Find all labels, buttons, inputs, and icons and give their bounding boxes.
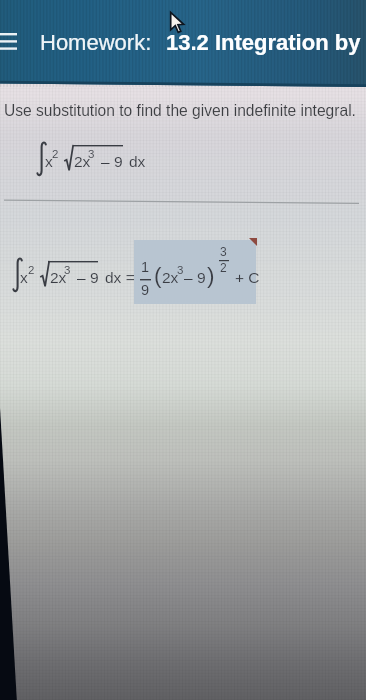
staticText: 2	[220, 261, 227, 274]
staticText: – 9	[101, 153, 123, 170]
staticText: 3	[64, 264, 71, 277]
staticText: Homework:	[40, 30, 152, 55]
button[interactable]: Open navigation menu	[0, 28, 26, 56]
staticText: 2x	[162, 269, 179, 286]
staticText: 2x	[74, 153, 91, 170]
staticText: 2x	[50, 269, 67, 286]
staticText: x	[20, 269, 28, 286]
button[interactable]	[134, 240, 256, 304]
staticText: 2	[52, 148, 59, 161]
staticText: dx =	[105, 269, 135, 286]
staticText: (	[154, 263, 162, 288]
staticText: – 9	[184, 269, 206, 286]
staticText: 3	[177, 264, 184, 277]
staticText: Use substitution to find the given indef…	[4, 102, 356, 119]
staticText: 13.2 Integration by	[166, 30, 361, 55]
staticText: 3	[88, 148, 95, 161]
staticText: )	[207, 263, 215, 288]
staticText: – 9	[77, 269, 99, 286]
staticText: 3	[220, 245, 227, 258]
staticText: + C	[235, 269, 260, 286]
staticText: 2	[28, 264, 35, 277]
staticText: 1	[141, 259, 150, 275]
staticText: x	[45, 153, 53, 170]
staticText: 9	[141, 282, 150, 298]
staticText: dx	[129, 153, 146, 170]
